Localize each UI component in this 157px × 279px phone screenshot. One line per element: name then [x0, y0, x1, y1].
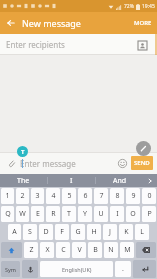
button[interactable]: P — [142, 206, 156, 222]
button[interactable]: 1 — [1, 188, 14, 204]
staticText: Y — [83, 209, 87, 219]
staticText: L — [140, 227, 144, 237]
staticText: 4 — [51, 191, 56, 201]
button[interactable]: I — [110, 206, 124, 222]
button[interactable]: 7 — [94, 188, 108, 204]
staticText: Z — [29, 245, 34, 255]
button[interactable]: . — [115, 261, 131, 277]
button[interactable]: Add recipient from contacts — [133, 36, 151, 54]
button[interactable]: Edit — [136, 141, 151, 156]
staticText: 19:45 — [142, 3, 155, 10]
button[interactable]: Voice input — [22, 260, 38, 278]
button[interactable]: Sym — [1, 261, 20, 277]
staticText: G — [75, 227, 81, 237]
button[interactable]: C — [56, 242, 70, 258]
button[interactable]: M — [120, 242, 134, 258]
staticText: N — [108, 245, 114, 255]
button[interactable]: 2 — [16, 188, 29, 204]
button[interactable]: H — [87, 224, 101, 240]
staticText: 72% — [124, 3, 134, 10]
button[interactable]: SEND — [131, 156, 153, 170]
button[interactable]: R — [46, 206, 60, 222]
staticText: A — [12, 227, 17, 237]
button[interactable]: 8 — [110, 188, 124, 204]
staticText: 3 — [35, 191, 40, 201]
button[interactable]: K — [119, 224, 133, 240]
staticText: E — [36, 209, 40, 219]
button[interactable]: X — [40, 242, 54, 258]
staticText: F — [60, 227, 64, 237]
button[interactable]: G — [71, 224, 85, 240]
staticText: MORE — [134, 19, 152, 27]
button[interactable]: E — [31, 206, 44, 222]
button[interactable]: Shift — [1, 242, 22, 258]
staticText: 6 — [83, 191, 88, 201]
button[interactable]: Emoji — [115, 156, 129, 170]
button[interactable]: 3 — [31, 188, 44, 204]
button[interactable]: Enter — [133, 260, 156, 278]
staticText: SEND — [134, 159, 150, 167]
button[interactable]: English(UK) — [40, 261, 113, 277]
staticText: 1 — [5, 191, 10, 201]
staticText: Enter message — [20, 158, 76, 169]
staticText: Q — [5, 209, 11, 219]
button[interactable]: Q — [1, 206, 14, 222]
staticText: 7 — [99, 191, 104, 201]
button[interactable]: B — [88, 242, 102, 258]
button[interactable]: 9 — [126, 188, 140, 204]
button[interactable]: The — [0, 174, 47, 187]
staticText: J — [109, 227, 111, 237]
staticText: K — [124, 227, 129, 237]
staticText: Sym — [5, 266, 16, 273]
staticText: U — [98, 209, 104, 219]
button[interactable]: Enter message — [20, 158, 115, 169]
button[interactable]: F — [55, 224, 69, 240]
button[interactable]: D — [39, 224, 53, 240]
button[interactable]: Translate — [17, 146, 28, 157]
button[interactable]: Z — [24, 242, 38, 258]
staticText: T — [67, 209, 71, 219]
staticText: M — [124, 245, 131, 255]
staticText: The — [17, 176, 30, 186]
staticText: 0 — [147, 191, 152, 201]
staticText: V — [77, 245, 82, 255]
staticText: H — [91, 227, 97, 237]
staticText: 5 — [67, 191, 72, 201]
button[interactable]: O — [126, 206, 140, 222]
staticText: W — [19, 209, 26, 219]
button[interactable]: J — [103, 224, 117, 240]
staticText: R — [51, 209, 56, 219]
staticText: X — [45, 245, 50, 255]
button[interactable]: A — [8, 224, 21, 240]
button[interactable]: More suggestions — [143, 174, 157, 187]
staticText: I — [70, 176, 73, 186]
staticText: 8 — [115, 191, 120, 201]
staticText: B — [93, 245, 98, 255]
button[interactable]: And — [96, 174, 143, 187]
staticText: 9 — [131, 191, 136, 201]
button[interactable]: MORE — [129, 12, 157, 34]
staticText: I — [116, 209, 119, 219]
button[interactable]: W — [16, 206, 29, 222]
button[interactable]: Y — [78, 206, 92, 222]
staticText: T — [21, 148, 25, 156]
button[interactable]: S — [23, 224, 37, 240]
staticText: C — [61, 245, 66, 255]
button[interactable]: Attach — [4, 156, 18, 170]
button[interactable]: 0 — [142, 188, 156, 204]
button[interactable]: Backspace — [136, 242, 156, 258]
button[interactable]: V — [72, 242, 86, 258]
staticText: Enter recipients — [6, 39, 65, 50]
button[interactable]: N — [104, 242, 118, 258]
staticText: P — [147, 209, 152, 219]
button[interactable]: 6 — [78, 188, 92, 204]
button[interactable]: T — [62, 206, 76, 222]
button[interactable]: I — [48, 174, 95, 187]
button[interactable]: 5 — [62, 188, 76, 204]
staticText: New message — [22, 17, 81, 29]
button[interactable]: Back — [0, 12, 22, 34]
button[interactable]: U — [94, 206, 108, 222]
button[interactable]: 4 — [46, 188, 60, 204]
button[interactable]: L — [135, 224, 149, 240]
staticText: D — [43, 227, 49, 237]
